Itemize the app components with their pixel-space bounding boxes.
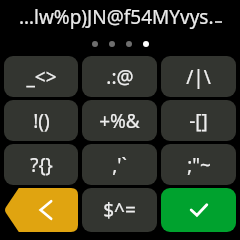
button[interactable]: …lw%p)JN@f54MYvys. bbox=[0, 0, 240, 34]
button[interactable]: Accept bbox=[161, 188, 236, 232]
button[interactable]: .:@ bbox=[82, 56, 157, 97]
button[interactable]: /|\ bbox=[161, 56, 236, 97]
staticText: +%& bbox=[99, 108, 140, 134]
staticText: …lw%p)JN@f54MYvys. bbox=[19, 4, 214, 30]
staticText: _<> bbox=[26, 64, 57, 90]
button[interactable]: _<> bbox=[4, 56, 78, 97]
staticText: !() bbox=[33, 108, 50, 134]
button[interactable]: $^= bbox=[82, 188, 157, 232]
button[interactable]: -[] bbox=[161, 100, 236, 141]
staticText: $^= bbox=[103, 197, 136, 223]
button[interactable]: ;"~ bbox=[161, 144, 236, 185]
staticText: /|\ bbox=[186, 64, 211, 90]
button[interactable]: ,'` bbox=[82, 144, 157, 185]
staticText: ;"~ bbox=[187, 152, 211, 178]
staticText: ,'` bbox=[112, 152, 127, 178]
button[interactable]: !() bbox=[4, 100, 78, 141]
staticText: -[] bbox=[189, 108, 208, 134]
button[interactable]: +%& bbox=[82, 100, 157, 141]
button[interactable]: ?{} bbox=[4, 144, 78, 185]
staticText: .:@ bbox=[106, 64, 134, 90]
staticText: ?{} bbox=[30, 152, 53, 178]
button[interactable]: Backspace bbox=[4, 188, 78, 232]
